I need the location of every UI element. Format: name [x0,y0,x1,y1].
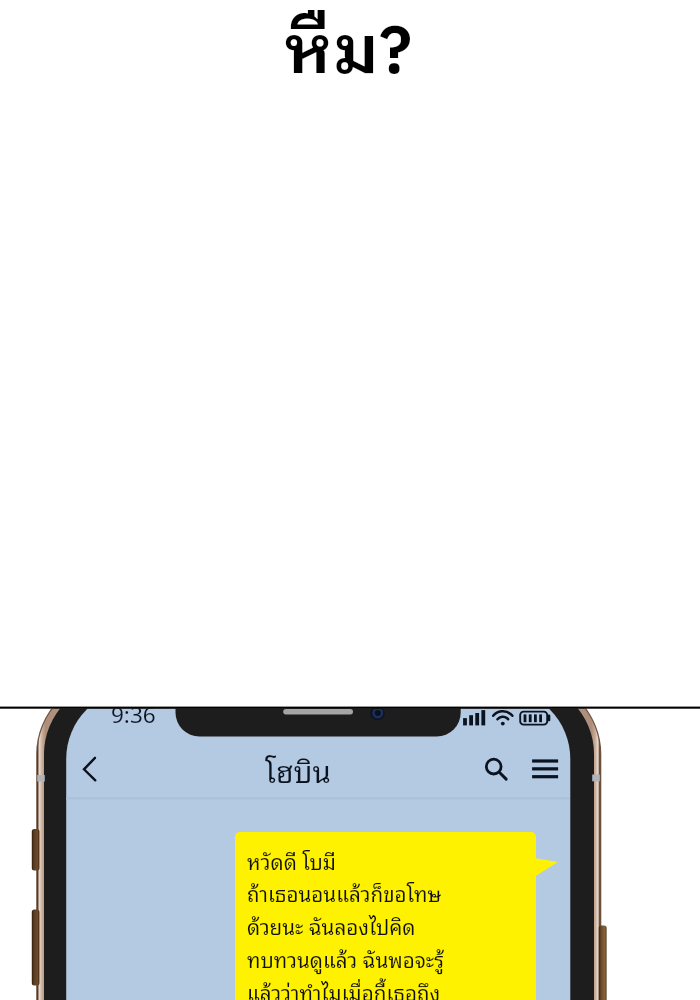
staticText: หวัดดี โบมี ถ้าเธอนอนแล้วก็ขอโทษ ด้วยนะ … [247,844,445,1000]
button[interactable]: หวัดดี โบมี ถ้าเธอนอนแล้วก็ขอโทษ ด้วยนะ … [235,832,536,1000]
button[interactable]: โฮบิน [249,740,347,799]
staticText: หืม? [284,0,413,109]
button[interactable]: Back [70,747,114,791]
button[interactable]: Search [472,745,516,789]
staticText: โฮบิน [265,746,331,793]
staticText: 9:36 [111,695,156,731]
button[interactable]: Menu [523,745,567,789]
